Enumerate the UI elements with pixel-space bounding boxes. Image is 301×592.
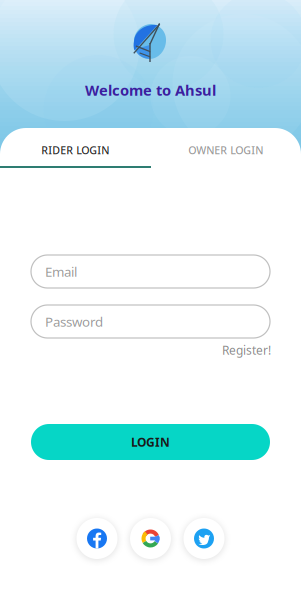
staticText: OWNER LOGIN	[188, 143, 263, 157]
button[interactable]: Sign in with Twitter	[183, 518, 224, 559]
button[interactable]: Password	[31, 305, 270, 338]
staticText: LOGIN	[131, 434, 170, 450]
button[interactable]: Register!	[32, 343, 271, 357]
staticText: Email	[45, 263, 77, 280]
button[interactable]: RIDER LOGIN	[0, 131, 150, 169]
staticText: Welcome to Ahsul	[85, 80, 216, 100]
staticText: Password	[45, 313, 103, 330]
staticText: RIDER LOGIN	[41, 143, 109, 157]
button[interactable]: OWNER LOGIN	[150, 131, 301, 169]
button[interactable]: Sign in with Facebook	[76, 518, 117, 559]
button[interactable]: LOGIN	[31, 424, 270, 460]
button[interactable]: Email	[31, 255, 270, 288]
button[interactable]: Sign in with Google	[130, 518, 171, 559]
staticText: Register!	[222, 342, 271, 358]
